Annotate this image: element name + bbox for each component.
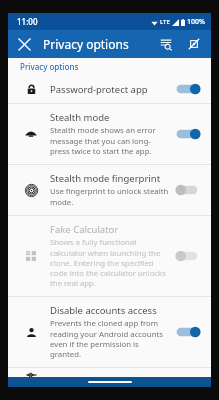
button[interactable]: Fake Calculator (8, 216, 211, 296)
staticText: Prevents the cloned app from reading you… (50, 318, 169, 360)
button[interactable]: Stealth mode fingerprint (8, 165, 211, 215)
button[interactable]: Password-protect app (8, 75, 211, 103)
button[interactable]: Disable accounts access (8, 297, 211, 367)
button[interactable]: Close (12, 32, 36, 56)
button[interactable]: On (175, 82, 201, 96)
staticText: Disable accounts access (50, 304, 157, 317)
staticText: Password-protect app (50, 83, 148, 96)
button[interactable]: Off (175, 249, 201, 263)
button[interactable]: Stealth mode (8, 104, 211, 164)
staticText: Stealth mode fingerprint (50, 172, 161, 185)
staticText: Privacy options (20, 61, 79, 72)
button[interactable]: Disable contacts access (8, 368, 211, 377)
staticText: Stealth mode shows an error message that… (50, 125, 169, 157)
button[interactable]: On (175, 325, 201, 339)
staticText: Use fingerprint to unlock stealth mode. (50, 186, 169, 208)
staticText: Privacy options (43, 36, 129, 52)
button[interactable]: Filter and search (154, 32, 178, 56)
staticText: Shows a fully functional calculator when… (50, 237, 169, 289)
staticText: Fake Calculator (50, 223, 119, 236)
button[interactable]: Off (175, 183, 201, 197)
button[interactable]: Sync disabled (182, 32, 206, 56)
staticText: LTE (160, 18, 170, 26)
staticText: 100% (187, 17, 205, 27)
staticText: 11:00 (17, 16, 38, 27)
button[interactable]: On (175, 127, 201, 141)
staticText: Stealth mode (50, 111, 110, 124)
